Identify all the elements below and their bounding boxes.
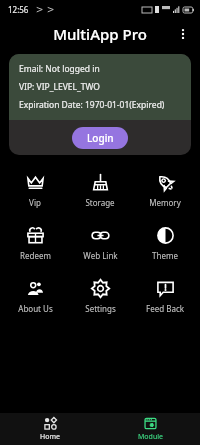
staticText: Vip bbox=[29, 197, 41, 208]
button[interactable]: Login bbox=[72, 127, 128, 149]
staticText: Login bbox=[87, 131, 114, 145]
staticText: VIP: VIP_LEVEL_TWO bbox=[19, 81, 100, 93]
button[interactable]: More options bbox=[170, 21, 196, 47]
button[interactable]: Settings bbox=[70, 275, 130, 318]
staticText: Settings bbox=[85, 303, 116, 314]
staticText: Home bbox=[40, 432, 60, 442]
button[interactable]: Feed Back bbox=[135, 275, 195, 318]
staticText: Email: Not logged in bbox=[19, 63, 100, 75]
button[interactable]: Vip bbox=[5, 169, 65, 212]
button[interactable]: Memory bbox=[135, 169, 195, 212]
button[interactable]: Theme bbox=[135, 222, 195, 265]
staticText: MultiApp Pro bbox=[53, 24, 147, 44]
button[interactable]: About Us bbox=[5, 275, 65, 318]
staticText: Storage bbox=[85, 197, 115, 208]
button[interactable]: Redeem bbox=[5, 222, 65, 265]
staticText: Web Link bbox=[83, 250, 118, 261]
staticText: Theme bbox=[152, 250, 178, 261]
staticText: Module bbox=[138, 432, 163, 442]
staticText: Memory bbox=[149, 197, 181, 208]
staticText: About Us bbox=[18, 303, 53, 314]
staticText: 12:56 bbox=[8, 4, 29, 15]
button[interactable]: Module bbox=[100, 413, 200, 445]
staticText: Redeem bbox=[20, 250, 51, 261]
button[interactable]: Home bbox=[0, 413, 100, 445]
staticText: Feed Back bbox=[146, 303, 184, 314]
button[interactable]: Web Link bbox=[70, 222, 130, 265]
staticText: Expiration Date: 1970-01-01(Expired) bbox=[19, 99, 165, 111]
button[interactable]: Storage bbox=[70, 169, 130, 212]
